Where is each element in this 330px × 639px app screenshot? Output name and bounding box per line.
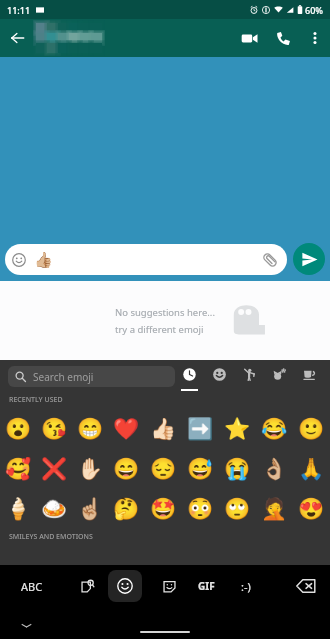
staticText: 🙄 bbox=[224, 497, 251, 522]
staticText: ➡️ bbox=[187, 417, 214, 442]
staticText: SMILEYS AND EMOTIONS bbox=[9, 532, 93, 542]
button[interactable]: 😘 bbox=[36, 409, 72, 449]
button[interactable]: ABC bbox=[4, 565, 60, 607]
button[interactable]: ⭐ bbox=[219, 409, 256, 449]
staticText: ❌ bbox=[41, 457, 68, 482]
button[interactable]: 😭 bbox=[219, 449, 256, 489]
staticText: 👍🏻 bbox=[150, 417, 177, 442]
staticText: 👌🏼 bbox=[261, 457, 288, 482]
button[interactable]: 😍 bbox=[293, 489, 330, 529]
button[interactable]: Search emoji bbox=[8, 366, 175, 387]
staticText: No suggestions here... bbox=[115, 306, 215, 319]
button[interactable]: 😄 bbox=[108, 449, 145, 489]
button[interactable]: 👌🏼 bbox=[256, 449, 293, 489]
button[interactable]: ➡️ bbox=[182, 409, 219, 449]
staticText: :-) bbox=[241, 579, 251, 594]
staticText: 😁 bbox=[77, 417, 104, 442]
staticText: 😮 bbox=[5, 417, 32, 442]
button[interactable]: More options bbox=[300, 23, 330, 53]
staticText: 😂 bbox=[261, 417, 288, 442]
staticText: 😔 bbox=[150, 457, 177, 482]
button[interactable]: 🤩 bbox=[145, 489, 182, 529]
button[interactable]: 👍🏻 bbox=[145, 409, 182, 449]
button[interactable]: 🙄 bbox=[219, 489, 256, 529]
staticText: 😘 bbox=[41, 417, 68, 442]
button[interactable]: Emoji category bbox=[204, 360, 234, 392]
button[interactable]: 😂 bbox=[256, 409, 293, 449]
staticText: try a different emoji bbox=[115, 323, 204, 336]
button[interactable]: Emoji category bbox=[234, 360, 264, 392]
button[interactable]: 🤦 bbox=[256, 489, 293, 529]
button[interactable]: ❌ bbox=[36, 449, 72, 489]
button[interactable]: 🤔 bbox=[108, 489, 145, 529]
button[interactable]: Search stickers bbox=[68, 565, 106, 607]
button[interactable]: 👍🏼 bbox=[5, 244, 287, 275]
staticText: 😭 bbox=[224, 457, 251, 482]
button[interactable]: ❤️ bbox=[108, 409, 145, 449]
staticText: ⭐ bbox=[224, 417, 251, 442]
staticText: ❤️ bbox=[113, 417, 140, 442]
staticText: 😍 bbox=[298, 497, 325, 522]
button[interactable]: Emoji category bbox=[174, 360, 204, 392]
button[interactable]: Emoji bbox=[108, 570, 142, 602]
button[interactable]: 😅 bbox=[182, 449, 219, 489]
button[interactable]: Video call bbox=[232, 21, 266, 55]
staticText: 😳 bbox=[187, 497, 214, 522]
button[interactable]: 🍦 bbox=[0, 489, 36, 529]
button[interactable]: 🍛 bbox=[36, 489, 72, 529]
staticText: 🙏 bbox=[298, 457, 325, 482]
staticText: 😄 bbox=[113, 457, 140, 482]
button[interactable]: Emoji category bbox=[294, 360, 324, 392]
button[interactable]: ☝️🏼 bbox=[72, 489, 108, 529]
button[interactable]: 😳 bbox=[182, 489, 219, 529]
staticText: 😅 bbox=[187, 457, 214, 482]
button[interactable]: Stickers bbox=[150, 565, 188, 607]
staticText: 🍛 bbox=[41, 497, 68, 522]
staticText: RECENTLY USED bbox=[9, 395, 63, 405]
button[interactable]: 🥰 bbox=[0, 449, 36, 489]
button[interactable]: Backspace bbox=[286, 565, 326, 607]
staticText: 60% bbox=[305, 4, 323, 16]
staticText: GIF bbox=[198, 579, 215, 593]
button[interactable]: 🙂 bbox=[293, 409, 330, 449]
button[interactable]: :-) bbox=[228, 565, 264, 607]
staticText: ABC bbox=[21, 579, 43, 594]
button[interactable]: 😮 bbox=[0, 409, 36, 449]
button[interactable]: 🙏 bbox=[293, 449, 330, 489]
staticText: 🤔 bbox=[113, 497, 140, 522]
staticText: ✋🏻 bbox=[77, 457, 104, 482]
button[interactable]: Emoji category bbox=[264, 360, 294, 392]
staticText: ☝️🏼 bbox=[77, 497, 104, 522]
button[interactable]: 😔 bbox=[145, 449, 182, 489]
staticText: 🥰 bbox=[5, 457, 32, 482]
staticText: 🤦 bbox=[261, 497, 288, 522]
button[interactable]: GIF bbox=[188, 565, 224, 607]
staticText: 11:11 bbox=[7, 4, 31, 16]
button[interactable]: 😁 bbox=[72, 409, 108, 449]
staticText: 🍦 bbox=[5, 497, 32, 522]
button[interactable]: Send bbox=[293, 243, 325, 275]
button[interactable]: ✋🏻 bbox=[72, 449, 108, 489]
staticText: 👍🏼 bbox=[34, 251, 53, 269]
button[interactable]: Back bbox=[0, 21, 34, 55]
button[interactable]: Voice call bbox=[266, 21, 300, 55]
staticText: 🤩 bbox=[150, 497, 177, 522]
button[interactable]: Hide keyboard bbox=[18, 617, 34, 633]
staticText: 🙂 bbox=[298, 417, 325, 442]
staticText: Search emoji bbox=[33, 370, 94, 384]
